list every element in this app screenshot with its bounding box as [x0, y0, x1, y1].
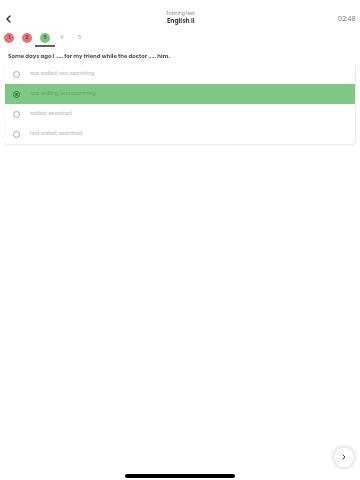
staticText: Some days ago I ..... for my friend whil…	[8, 52, 170, 60]
staticText: 02:48	[338, 14, 356, 23]
staticText: was waiting; was examining	[30, 90, 96, 97]
staticText: was waited; was examining	[30, 70, 95, 77]
button[interactable]: was waited; was examining	[5, 64, 355, 84]
button[interactable]: 2	[18, 28, 36, 47]
staticText: 1	[8, 33, 11, 41]
staticText: 3	[43, 33, 47, 41]
staticText: Training test	[166, 10, 195, 17]
staticText: 2	[25, 33, 29, 41]
button[interactable]: Next question	[331, 444, 357, 470]
button[interactable]: 3	[36, 28, 54, 47]
staticText: had waited; examined	[30, 130, 83, 137]
button[interactable]: 5	[72, 28, 90, 47]
staticText: 4	[60, 33, 64, 41]
button[interactable]: had waited; examined	[5, 124, 355, 144]
staticText: 5	[78, 33, 82, 41]
button[interactable]: was waiting; was examining	[5, 84, 355, 104]
staticText: English II	[167, 17, 195, 26]
button[interactable]: Back	[1, 5, 19, 23]
staticText: waited; examined	[30, 110, 72, 117]
button[interactable]: waited; examined	[5, 104, 355, 124]
button[interactable]: 1	[0, 28, 18, 47]
button[interactable]: 4	[54, 28, 72, 47]
